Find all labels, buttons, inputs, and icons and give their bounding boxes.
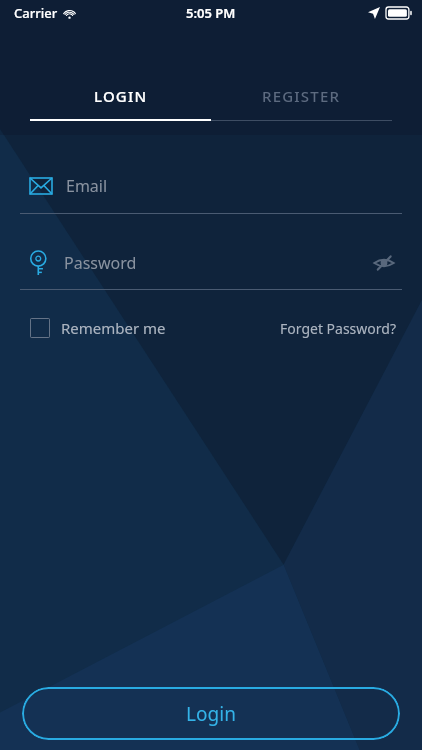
button[interactable]: Show password	[366, 246, 402, 280]
staticText: Email	[66, 175, 108, 197]
staticText: REGISTER	[262, 86, 341, 106]
staticText: LOGIN	[94, 86, 148, 106]
button[interactable]: Login	[22, 687, 400, 740]
button[interactable]: Email	[20, 169, 402, 214]
button[interactable]: Password	[20, 250, 366, 276]
button[interactable]: REGISTER	[211, 82, 392, 110]
staticText: Login	[186, 701, 236, 727]
staticText: 5:05 PM	[186, 4, 236, 22]
button[interactable]: Remember me	[20, 312, 176, 344]
staticText: Password	[64, 252, 137, 274]
button[interactable]: Forget Password?	[274, 313, 402, 344]
staticText: Remember me	[61, 318, 166, 338]
staticText: Forget Password?	[280, 319, 396, 338]
button[interactable]: LOGIN	[30, 82, 211, 110]
staticText: Carrier	[14, 4, 58, 22]
